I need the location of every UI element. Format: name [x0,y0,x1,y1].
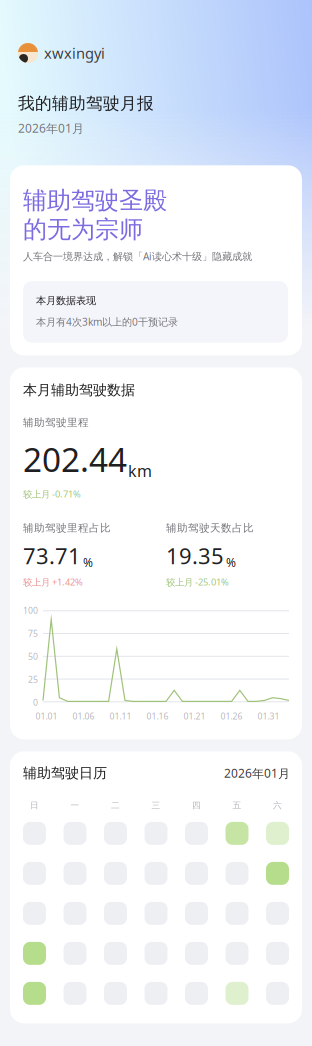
staticText: 0 [33,696,38,708]
staticText: 01.01 [35,710,57,722]
staticText: 辅助驾驶圣殿 [23,185,167,215]
staticText: 的无为宗师 [23,214,143,244]
staticText: 01.31 [257,710,279,722]
staticText: 四 [192,800,201,811]
staticText: 25 [28,673,38,685]
staticText: 辅助驾驶里程 [23,416,89,429]
staticText: 本月数据表现 [36,294,96,307]
staticText: 202.44 [23,436,127,482]
staticText: 01.21 [183,710,205,722]
staticText: 本月辅助驾驶数据 [23,381,135,399]
staticText: 01.11 [109,710,131,722]
staticText: xwxingyi [44,43,105,63]
staticText: % [83,554,93,570]
staticText: 二 [111,800,120,811]
staticText: 我的辅助驾驶月报 [18,93,154,114]
staticText: 三 [151,800,160,811]
staticText: 本月有4次3km以上的0干预记录 [36,315,178,329]
staticText: 2026年01月 [224,765,290,781]
staticText: 19.35 [166,541,224,571]
staticText: 较上月 -0.71% [23,488,81,500]
staticText: 01.26 [220,710,242,722]
staticText: 73.71 [23,541,81,571]
staticText: 较上月 +1.42% [23,576,83,588]
staticText: 人车合一境界达成，解锁「Ai读心术十级」隐藏成就 [23,249,252,263]
staticText: 01.16 [146,710,168,722]
staticText: 01.06 [72,710,94,722]
staticText: 日 [30,800,39,811]
staticText: 辅助驾驶日历 [23,764,107,782]
staticText: 75 [28,627,38,639]
staticText: 六 [273,800,282,811]
staticText: 辅助驾驶天数占比 [166,521,254,535]
staticText: 较上月 -25.01% [166,576,229,588]
staticText: 100 [23,604,38,616]
staticText: 2026年01月 [18,120,84,136]
staticText: 五 [232,800,241,811]
staticText: 一 [70,800,79,811]
staticText: km [128,460,152,482]
button[interactable]: xwxingyi [18,43,294,63]
staticText: 辅助驾驶里程占比 [23,521,111,535]
staticText: % [226,554,236,570]
staticText: 50 [28,650,38,662]
